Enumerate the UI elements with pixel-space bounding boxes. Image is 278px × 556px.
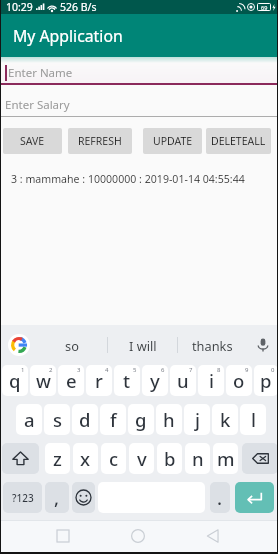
staticText: thanks: [192, 337, 233, 354]
staticText: 8: [217, 366, 221, 374]
button[interactable]: o: [226, 365, 252, 396]
button[interactable]: g: [128, 404, 154, 435]
staticText: f: [110, 407, 117, 432]
staticText: o: [233, 368, 245, 393]
button[interactable]: Shift: [2, 443, 39, 474]
staticText: l: [251, 407, 256, 432]
button[interactable]: d: [72, 404, 98, 435]
button[interactable]: f: [100, 404, 126, 435]
button[interactable]: x: [73, 443, 98, 474]
staticText: c: [109, 446, 119, 471]
button[interactable]: ?123: [3, 482, 42, 513]
button[interactable]: Back: [193, 520, 233, 552]
button[interactable]: k: [212, 404, 238, 435]
button[interactable]: Enter: [235, 482, 274, 513]
staticText: 10:29: [6, 0, 33, 14]
staticText: u: [177, 368, 189, 393]
button[interactable]: I will: [108, 325, 177, 365]
staticText: My Application: [13, 25, 123, 47]
button[interactable]: b: [157, 443, 182, 474]
staticText: p: [260, 368, 272, 393]
button[interactable]: UPDATE: [143, 128, 202, 154]
staticText: v: [137, 446, 147, 471]
button[interactable]: so: [37, 325, 107, 365]
button[interactable]: m: [213, 443, 238, 474]
staticText: Enter Name: [8, 65, 73, 81]
staticText: w: [36, 368, 51, 393]
button[interactable]: Enter Salary: [0, 95, 278, 117]
staticText: g: [135, 407, 147, 432]
button[interactable]: v: [129, 443, 154, 474]
staticText: I will: [129, 337, 157, 354]
staticText: 9: [245, 366, 249, 374]
button[interactable]: Recents: [43, 520, 83, 552]
staticText: 7: [189, 366, 193, 374]
staticText: ?123: [12, 491, 34, 505]
button[interactable]: s: [44, 404, 70, 435]
staticText: d: [79, 407, 91, 432]
staticText: h: [163, 407, 175, 432]
staticText: b: [164, 446, 176, 471]
staticText: 0: [271, 366, 275, 374]
button[interactable]: ,: [45, 482, 69, 513]
button[interactable]: y: [142, 365, 168, 396]
staticText: 4: [105, 366, 109, 374]
staticText: n: [192, 446, 204, 471]
staticText: 5: [133, 366, 137, 374]
staticText: t: [123, 368, 131, 393]
staticText: ,: [54, 485, 60, 510]
staticText: k: [220, 407, 231, 432]
staticText: 1: [21, 366, 25, 374]
button[interactable]: thanks: [178, 325, 247, 365]
button[interactable]: Emoji: [72, 482, 95, 513]
staticText: q: [9, 368, 21, 393]
button[interactable]: l: [240, 404, 266, 435]
staticText: SAVE: [20, 134, 45, 148]
staticText: j: [195, 407, 200, 432]
button[interactable]: r: [86, 365, 112, 396]
button[interactable]: u: [170, 365, 196, 396]
staticText: DELETEALL: [211, 134, 266, 148]
button[interactable]: Backspace: [242, 443, 278, 474]
button[interactable]: t: [114, 365, 140, 396]
button[interactable]: i: [198, 365, 224, 396]
staticText: i: [209, 368, 214, 393]
button[interactable]: DELETEALL: [206, 128, 271, 154]
button[interactable]: .: [210, 482, 230, 513]
staticText: 3 : mammahe : 10000000 : 2019-01-14 04:5…: [11, 172, 245, 186]
staticText: 6: [161, 366, 165, 374]
staticText: r: [95, 368, 103, 393]
staticText: e: [66, 368, 77, 393]
staticText: a: [24, 407, 35, 432]
button[interactable]: e: [58, 365, 84, 396]
staticText: z: [53, 446, 62, 471]
staticText: 3: [77, 366, 81, 374]
staticText: 2: [49, 366, 53, 374]
staticText: s: [53, 407, 62, 432]
button[interactable]: Enter Name: [0, 62, 278, 85]
button[interactable]: q: [2, 365, 28, 396]
staticText: Enter Salary: [5, 97, 70, 113]
button[interactable]: Voice input: [247, 325, 278, 365]
button[interactable]: Home: [118, 520, 158, 552]
button[interactable]: j: [184, 404, 210, 435]
staticText: .: [217, 485, 223, 510]
button[interactable]: n: [185, 443, 210, 474]
button[interactable]: w: [30, 365, 56, 396]
button[interactable]: z: [45, 443, 70, 474]
button[interactable]: Google: [0, 325, 37, 365]
button[interactable]: a: [16, 404, 42, 435]
button[interactable]: h: [156, 404, 182, 435]
button[interactable]: REFRESH: [68, 128, 132, 154]
staticText: 69: [261, 4, 268, 11]
staticText: so: [65, 337, 79, 354]
staticText: x: [80, 446, 91, 471]
staticText: y: [150, 368, 160, 393]
button[interactable]: SAVE: [3, 128, 62, 154]
staticText: m: [217, 446, 235, 471]
button[interactable]: c: [101, 443, 126, 474]
staticText: REFRESH: [78, 134, 122, 148]
staticText: UPDATE: [153, 134, 193, 148]
button[interactable]: p: [254, 365, 278, 396]
